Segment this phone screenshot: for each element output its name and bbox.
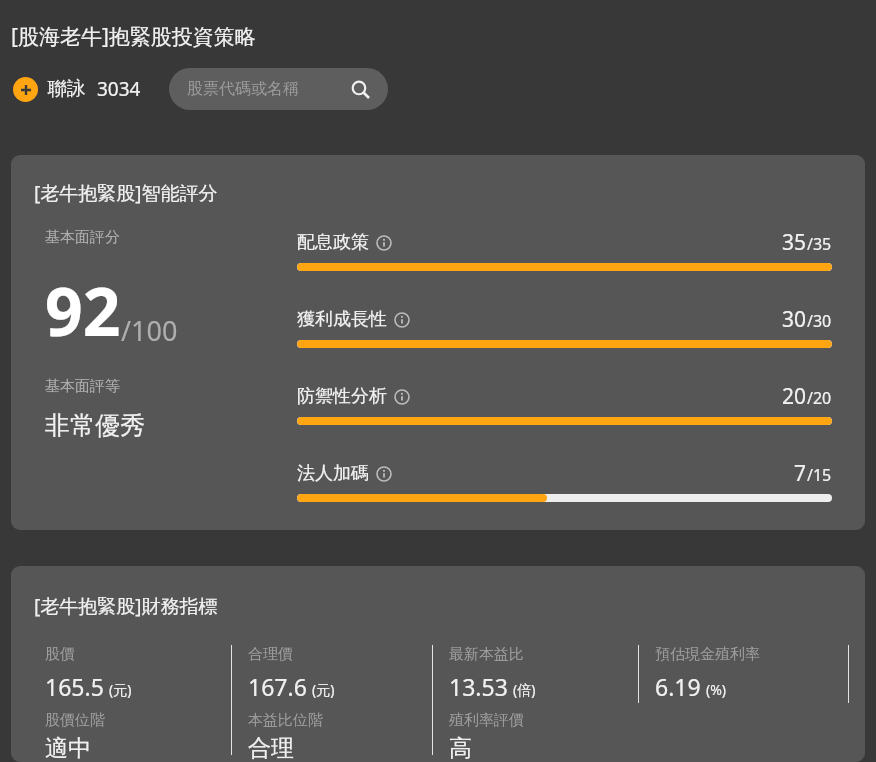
staticText: 本益比位階 (248, 711, 323, 730)
staticText: /20 (807, 387, 832, 409)
staticText: (%) (706, 680, 727, 699)
staticText: 法人加碼 (297, 462, 369, 485)
staticText: 基本面評等 (45, 377, 120, 396)
staticText: 165.5 (45, 671, 104, 702)
staticText: 非常優秀 (45, 410, 145, 441)
staticText: 6.19 (655, 671, 701, 702)
staticText: /30 (807, 310, 832, 332)
other: 獲利成長性 說明 (394, 312, 410, 328)
staticText: 聯詠 (48, 77, 86, 101)
button[interactable]: 防禦性分析 (297, 382, 832, 425)
other: 配息政策 說明 (376, 235, 392, 251)
staticText: 167.6 (248, 671, 307, 702)
staticText: [老牛抱緊股]財務指標 (34, 593, 218, 619)
other: 法人加碼 說明 (376, 466, 392, 482)
staticText: 20 (782, 382, 807, 411)
staticText: 股價 (45, 645, 75, 664)
button[interactable]: 法人加碼 (297, 459, 832, 502)
staticText: 獲利成長性 (297, 308, 387, 331)
staticText: 防禦性分析 (297, 385, 387, 408)
staticText: 7 (794, 459, 807, 488)
staticText: 股價位階 (45, 711, 105, 730)
staticText: /35 (807, 233, 832, 255)
staticText: (元) (109, 680, 132, 699)
staticText: 股票代碼或名稱 (187, 79, 299, 99)
staticText: 3034 (97, 76, 141, 102)
button[interactable]: 股票代碼或名稱 (169, 68, 388, 110)
staticText: 預估現金殖利率 (655, 645, 760, 664)
staticText: 合理價 (248, 645, 293, 664)
staticText: 最新本益比 (449, 645, 524, 664)
staticText: 13.53 (449, 671, 508, 702)
staticText: 殖利率評價 (449, 711, 524, 730)
staticText: 92 (45, 265, 121, 355)
button[interactable]: 獲利成長性 (297, 305, 832, 348)
staticText: 基本面評分 (45, 228, 120, 247)
staticText: /15 (807, 464, 832, 486)
staticText: [老牛抱緊股]智能評分 (34, 180, 218, 206)
button[interactable]: Add to watchlist (13, 77, 38, 102)
staticText: 合理 (248, 734, 294, 762)
staticText: 適中 (45, 734, 91, 762)
staticText: 30 (782, 305, 807, 334)
staticText: /100 (121, 312, 178, 349)
staticText: (元) (312, 680, 335, 699)
staticText: (倍) (513, 680, 536, 699)
staticText: 配息政策 (297, 231, 369, 254)
other: 防禦性分析 說明 (394, 389, 410, 405)
button[interactable]: 配息政策 (297, 228, 832, 271)
staticText: 高 (449, 734, 472, 762)
staticText: 35 (782, 228, 807, 257)
staticText: [股海老牛]抱緊股投資策略 (11, 22, 256, 51)
